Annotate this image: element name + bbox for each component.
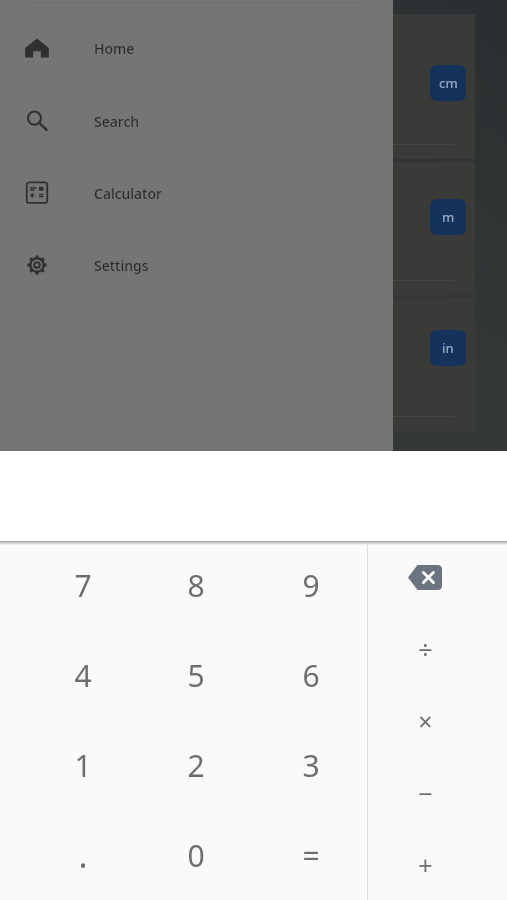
staticText: − [418,776,433,810]
staticText: Calculator [94,184,162,203]
button[interactable]: Multiply [369,685,481,757]
staticText: 4 [74,655,92,696]
other: Calculator [21,177,53,209]
staticText: 2 [187,745,205,786]
button[interactable]: 1 [26,720,139,810]
button[interactable]: Home [0,24,393,72]
button[interactable] [330,14,475,159]
staticText: in [442,339,454,357]
staticText: 3 [302,745,320,786]
staticText: 0 [187,835,205,876]
other: Search [21,105,53,137]
button[interactable]: 8 [139,540,252,630]
staticText: Settings [94,256,149,275]
staticText: 6 [302,655,320,696]
staticText: 1 [74,745,92,786]
button[interactable]: 3 [254,720,367,810]
button[interactable]: Search [0,97,393,145]
staticText: × [418,704,433,738]
button[interactable]: Divide [369,613,481,685]
button[interactable]: Subtract [369,757,481,829]
staticText: m [442,208,455,226]
button[interactable]: 4 [26,630,139,720]
staticText: = [302,835,320,876]
button[interactable]: Settings [0,241,393,289]
button[interactable]: 6 [254,630,367,720]
staticText: 8 [187,565,205,606]
button[interactable] [330,162,475,295]
button[interactable]: Add [369,829,481,900]
other: Settings [21,249,53,281]
staticText: Search [94,112,140,131]
button[interactable]: = [254,810,367,900]
button[interactable]: Calculator [0,169,393,217]
other: Home [21,32,53,64]
button[interactable]: . [26,810,139,900]
staticText: Home [94,39,135,58]
button[interactable]: 5 [139,630,252,720]
staticText: 7 [74,565,92,606]
staticText: . [78,832,88,878]
staticText: + [418,848,433,882]
button[interactable]: 7 [26,540,139,630]
button[interactable]: 2 [139,720,252,810]
button[interactable]: 9 [254,540,367,630]
staticText: 9 [302,565,320,606]
staticText: cm [439,74,458,92]
staticText: 5 [187,655,205,696]
button[interactable] [330,298,475,431]
staticText: ÷ [418,632,433,666]
button[interactable]: 0 [139,810,252,900]
button[interactable]: Backspace [369,541,481,613]
